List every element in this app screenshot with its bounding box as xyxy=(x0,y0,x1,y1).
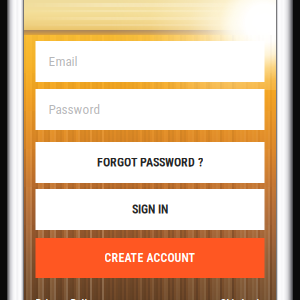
button[interactable]: Skip Login xyxy=(220,297,264,300)
staticText: Skip Login xyxy=(220,297,264,300)
button[interactable]: Privacy Policy xyxy=(35,297,97,300)
button[interactable]: CREATE ACCOUNT xyxy=(35,238,264,278)
button[interactable]: FORGOT PASSWORD ? xyxy=(35,142,264,183)
staticText: CREATE ACCOUNT xyxy=(104,251,195,265)
button[interactable]: Password xyxy=(35,89,264,130)
button[interactable]: Email xyxy=(35,41,264,82)
staticText: SIGN IN xyxy=(132,202,168,217)
staticText: FORGOT PASSWORD ? xyxy=(97,155,203,170)
staticText: Privacy Policy xyxy=(35,297,97,300)
staticText: Email xyxy=(48,54,77,69)
button[interactable]: SIGN IN xyxy=(35,189,264,230)
staticText: Password xyxy=(48,102,100,117)
